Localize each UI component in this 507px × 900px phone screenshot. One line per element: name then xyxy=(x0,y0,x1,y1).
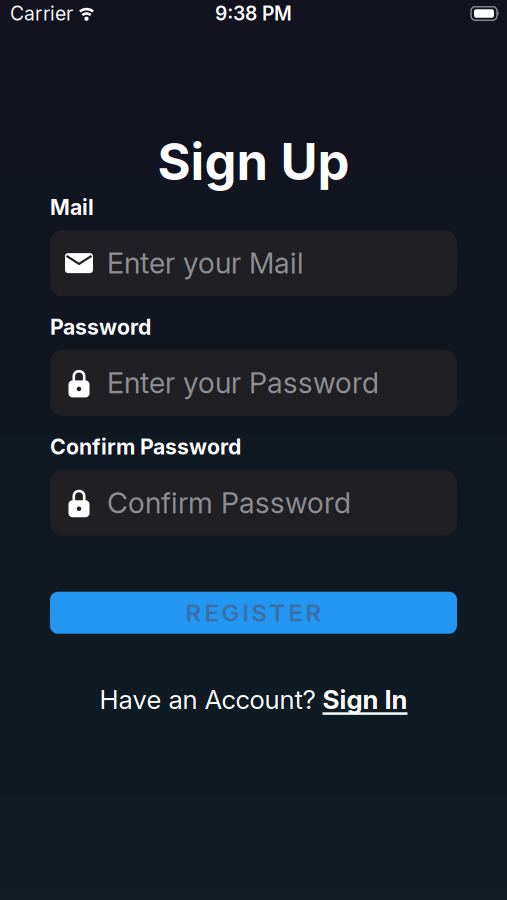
staticText: Have an Account? xyxy=(99,684,322,715)
staticText: Enter your Mail xyxy=(107,246,304,280)
staticText: Confirm Password xyxy=(107,485,351,520)
button[interactable]: Enter your Password xyxy=(50,350,457,416)
button[interactable]: Sign In xyxy=(322,684,407,715)
staticText: Enter your Password xyxy=(107,366,379,400)
staticText: Mail xyxy=(50,194,94,220)
staticText: 9:38 PM xyxy=(215,2,292,25)
staticText: REGISTER xyxy=(185,598,321,627)
staticText: Password xyxy=(50,314,151,340)
staticText: Sign Up xyxy=(157,131,349,192)
staticText: Confirm Password xyxy=(50,434,241,460)
button[interactable]: Confirm Password xyxy=(50,470,457,536)
button[interactable]: Enter your Mail xyxy=(50,230,457,296)
staticText: Sign In xyxy=(322,684,407,715)
staticText: Carrier xyxy=(10,2,73,25)
button[interactable]: REGISTER xyxy=(50,592,457,634)
